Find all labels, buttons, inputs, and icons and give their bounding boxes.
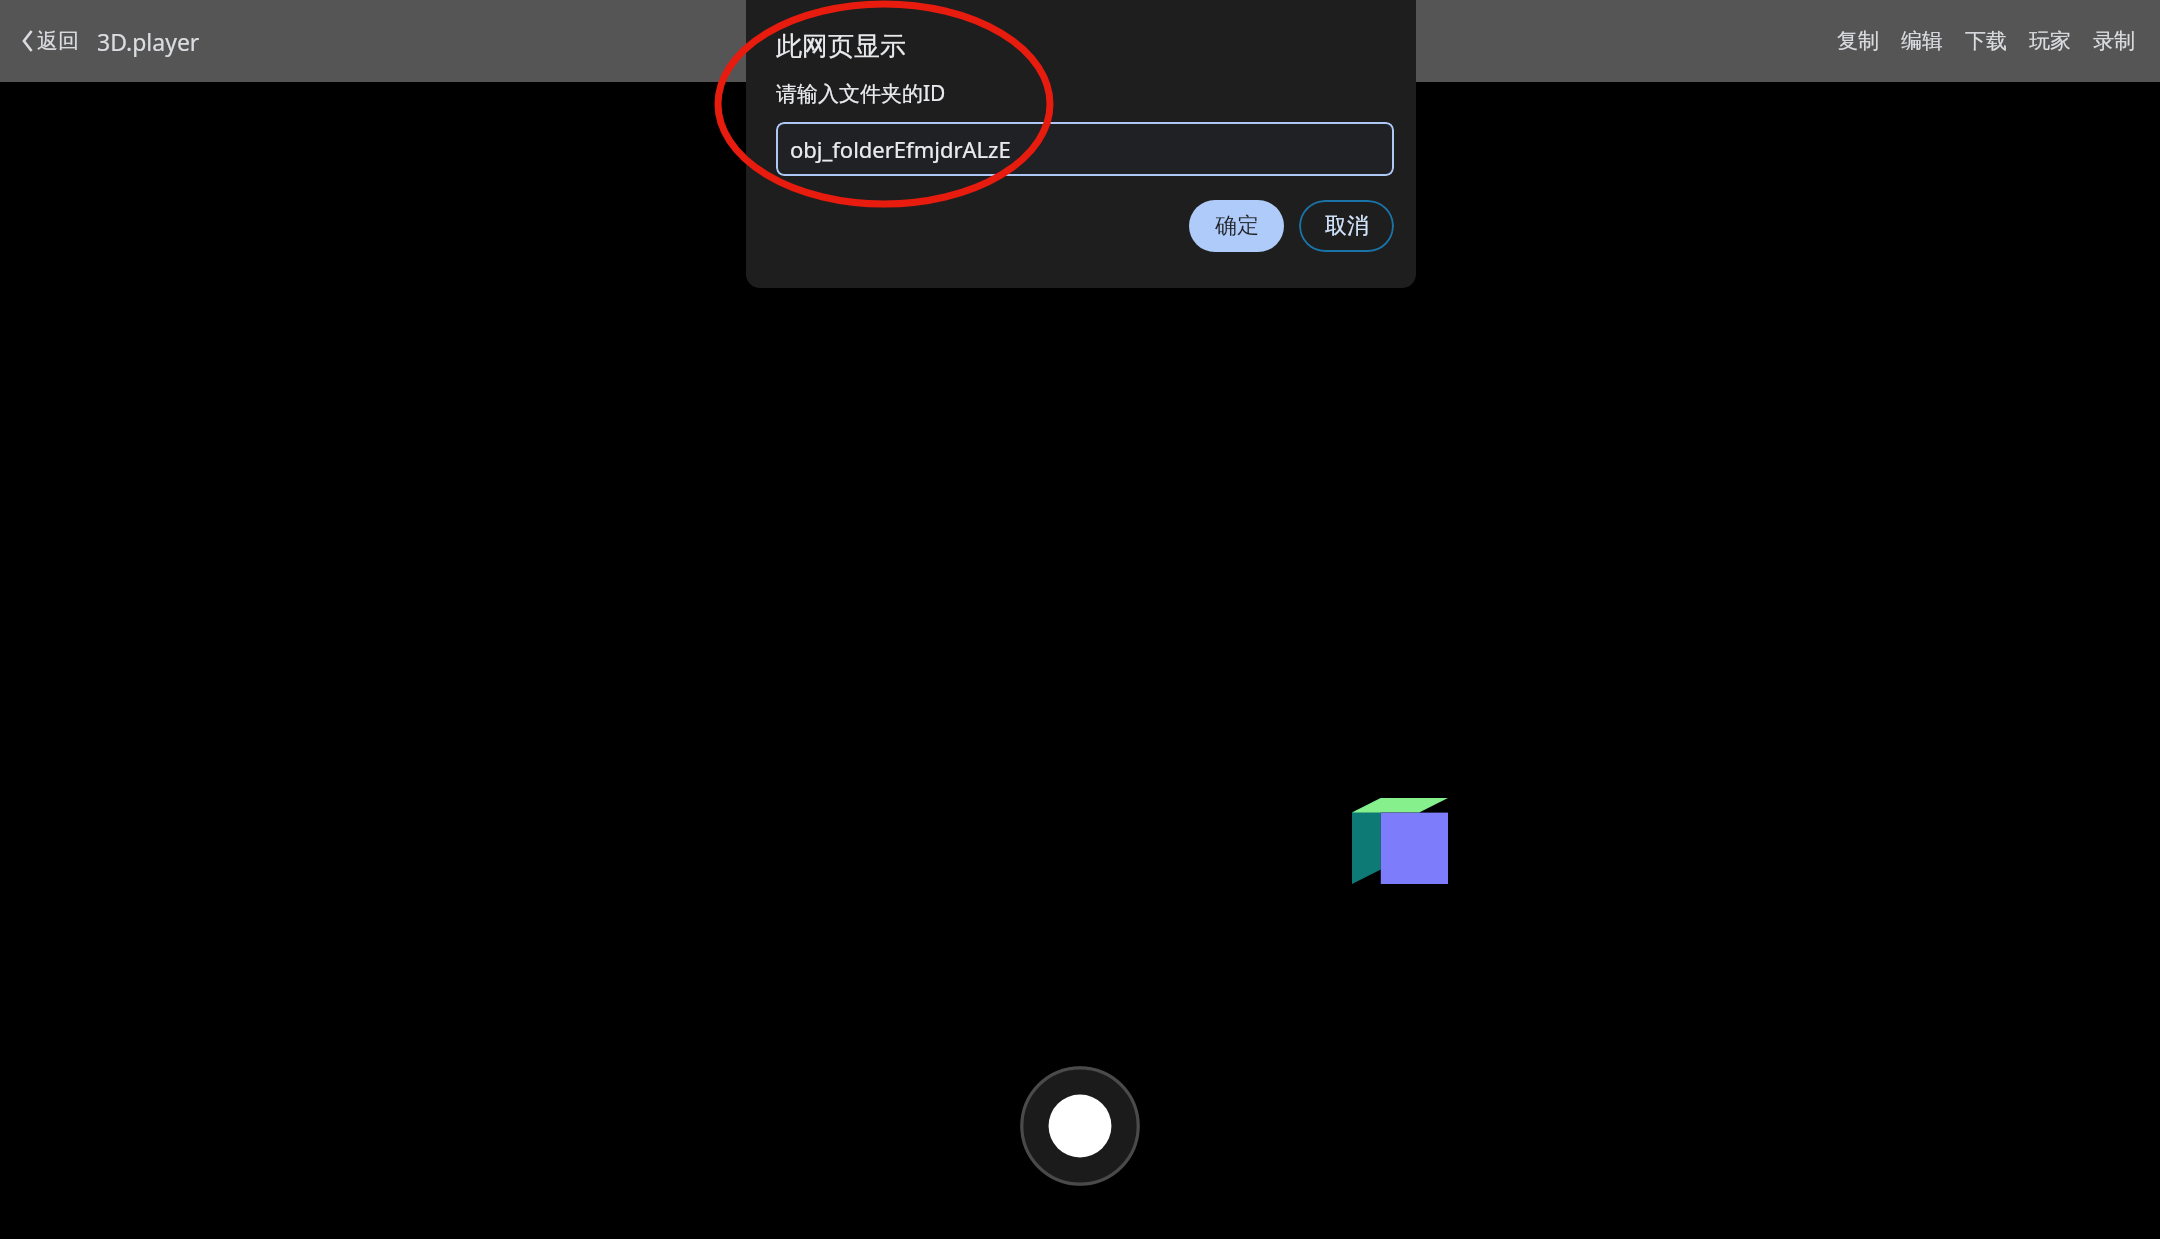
button[interactable]: Record <box>1020 1066 1140 1186</box>
button[interactable]: 玩家 <box>2018 19 2082 63</box>
staticText: 复制 <box>1837 28 1879 54</box>
button[interactable]: 录制 <box>2082 19 2146 63</box>
staticText: 3D.player <box>97 26 200 57</box>
staticText: 取消 <box>1325 212 1369 240</box>
staticText: 返回 <box>37 28 79 54</box>
button[interactable]: 编辑 <box>1890 19 1954 63</box>
button[interactable]: obj_folderEfmjdrALzE <box>776 122 1394 176</box>
button[interactable]: 确定 <box>1189 200 1284 252</box>
staticText: 下载 <box>1965 28 2007 54</box>
staticText: 编辑 <box>1901 28 1943 54</box>
button[interactable]: 取消 <box>1299 200 1394 252</box>
button[interactable]: 返回 <box>16 20 85 62</box>
button[interactable]: 复制 <box>1826 19 1890 63</box>
staticText: 此网页显示 <box>776 30 906 63</box>
staticText: 录制 <box>2093 28 2135 54</box>
staticText: obj_folderEfmjdrALzE <box>790 134 1011 164</box>
staticText: 玩家 <box>2029 28 2071 54</box>
staticText: 确定 <box>1215 212 1259 240</box>
button[interactable]: 下载 <box>1954 19 2018 63</box>
staticText: 请输入文件夹的ID <box>776 79 946 108</box>
